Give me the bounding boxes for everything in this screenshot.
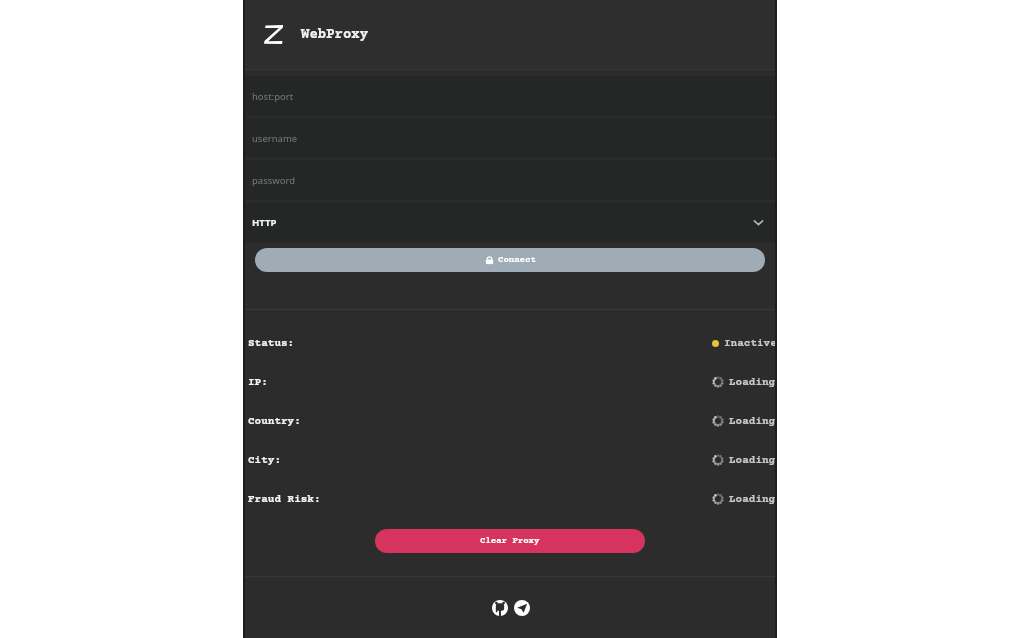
staticText: host:port — [252, 90, 294, 103]
button[interactable]: Fraud Risk: — [243, 479, 777, 518]
button[interactable]: HTTP — [243, 202, 777, 242]
staticText: Loading... — [729, 493, 777, 505]
staticText: City: — [248, 454, 281, 466]
button[interactable]: Connect — [255, 248, 765, 272]
button[interactable]: username — [243, 118, 777, 158]
button[interactable]: host:port — [243, 76, 777, 116]
button[interactable]: Telegram — [512, 598, 531, 617]
staticText: IP: — [248, 376, 268, 388]
button[interactable]: Country: — [243, 401, 777, 440]
staticText: Clear Proxy — [480, 536, 540, 546]
staticText: HTTP — [252, 216, 277, 229]
staticText: password — [252, 174, 296, 187]
button[interactable]: IP: — [243, 362, 777, 401]
button[interactable]: Status: — [243, 323, 777, 362]
button[interactable]: Clear Proxy — [375, 529, 645, 553]
staticText: Loading... — [729, 376, 777, 388]
staticText: Loading... — [729, 415, 777, 427]
staticText: Connect — [498, 255, 536, 265]
staticText: Fraud Risk: — [248, 493, 321, 505]
staticText: Status: — [248, 337, 295, 349]
button[interactable]: GitHub — [490, 598, 509, 617]
other: Select protocol — [752, 216, 765, 229]
staticText: WebProxy — [301, 27, 369, 43]
staticText: Inactive — [724, 337, 777, 349]
button[interactable]: password — [243, 160, 777, 200]
staticText: Country: — [248, 415, 301, 427]
button[interactable]: City: — [243, 440, 777, 479]
staticText: username — [252, 132, 298, 145]
staticText: Loading... — [729, 454, 777, 466]
